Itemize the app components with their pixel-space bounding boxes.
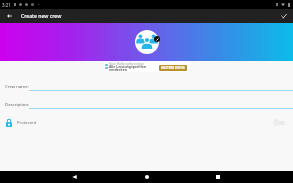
button[interactable]: Home [140, 171, 154, 183]
staticText: Description: [5, 101, 30, 107]
staticText: Create new crew [21, 13, 62, 20]
button[interactable]: WEITERE INFOS [159, 65, 187, 71]
staticText: entdecken [109, 67, 127, 72]
staticText: 3:21 [2, 2, 11, 8]
staticText: Crew name: [5, 83, 29, 89]
button[interactable]: Back [67, 171, 81, 183]
staticText: Alle Leistungsprofilen [109, 64, 146, 69]
staticText: Protected [17, 120, 37, 126]
staticText: Neue Meldung/Agriculture [109, 62, 145, 66]
button[interactable]: Protected [0, 114, 293, 131]
button[interactable]: Back [0, 9, 19, 23]
staticText: WEITERE INFOS [161, 66, 185, 70]
button[interactable]: Confirm [277, 9, 291, 23]
button[interactable]: Recents [211, 171, 225, 183]
button[interactable]: Edit photo [135, 30, 159, 54]
